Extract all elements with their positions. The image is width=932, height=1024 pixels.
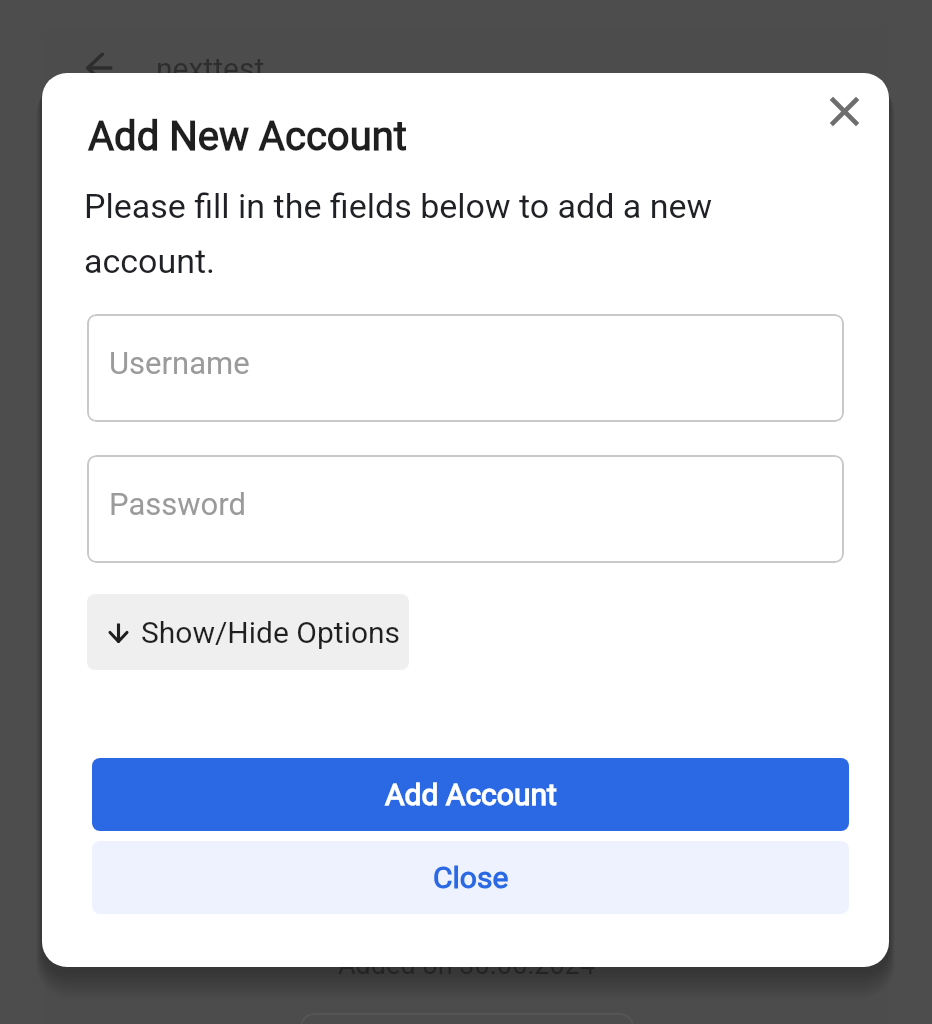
staticText: Added on 30.06.2024 bbox=[338, 949, 595, 981]
staticText: Username bbox=[109, 345, 250, 381]
button[interactable]: Add Account bbox=[92, 758, 849, 831]
button[interactable]: Password bbox=[87, 455, 844, 563]
staticText: Password bbox=[109, 486, 246, 522]
button[interactable]: Show/Hide Options bbox=[87, 594, 409, 670]
button[interactable]: Navigate back bbox=[72, 40, 127, 95]
staticText: Please fill in the fields below to add a… bbox=[84, 186, 784, 281]
staticText: Show/Hide Options bbox=[141, 615, 401, 650]
button[interactable]: Username bbox=[87, 314, 844, 422]
button[interactable]: Close bbox=[92, 841, 849, 914]
staticText: Add Account bbox=[385, 777, 557, 812]
button[interactable]: Close dialog bbox=[806, 73, 883, 150]
button[interactable]: Account action bbox=[300, 1013, 634, 1024]
staticText: nexttest bbox=[156, 51, 265, 86]
staticText: Close bbox=[433, 860, 509, 895]
staticText: Add New Account bbox=[88, 113, 407, 160]
